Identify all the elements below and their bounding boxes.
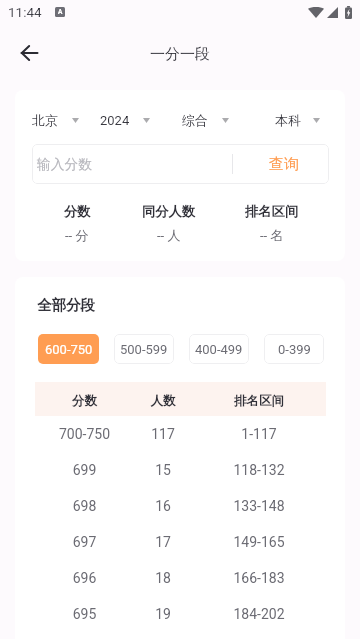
button[interactable]: 698 [15, 488, 345, 524]
staticText: 698 [35, 498, 134, 514]
staticText: 全部分段 [37, 296, 95, 314]
staticText: 综合 [182, 112, 208, 128]
staticText: -- 人 [157, 227, 181, 243]
staticText: 本科 [275, 112, 301, 128]
staticText: 人数 [134, 393, 192, 409]
staticText: 分数 [35, 393, 134, 409]
button[interactable]: 696 [15, 560, 345, 596]
staticText: 166-183 [192, 570, 326, 586]
button[interactable]: 699 [15, 452, 345, 488]
staticText: -- 名 [260, 227, 284, 243]
button[interactable]: 697 [15, 524, 345, 560]
staticText: 700-750 [35, 426, 134, 442]
staticText: -- 分 [65, 227, 89, 243]
staticText: 查询 [269, 155, 299, 174]
staticText: 2024 [100, 113, 130, 128]
staticText: A [58, 8, 63, 16]
staticText: 16 [134, 498, 192, 514]
staticText: 400-499 [195, 342, 243, 357]
staticText: 排名区间 [245, 203, 299, 220]
staticText: 15 [134, 462, 192, 478]
staticText: 0-399 [278, 342, 311, 357]
staticText: 北京 [32, 112, 58, 128]
staticText: 500-599 [120, 342, 168, 357]
staticText: 11:44 [8, 4, 42, 20]
staticText: 118-132 [192, 462, 326, 478]
staticText: 184-202 [192, 606, 326, 622]
button[interactable]: 600-750 [38, 334, 99, 364]
staticText: 17 [134, 534, 192, 550]
button[interactable]: 查询 [233, 144, 329, 184]
staticText: 同分人数 [142, 203, 196, 220]
button[interactable]: 700-750 [15, 416, 345, 452]
button[interactable]: 0-399 [264, 334, 324, 364]
button[interactable]: 北京 [32, 109, 79, 131]
staticText: 19 [134, 606, 192, 622]
button[interactable]: 695 [15, 596, 345, 632]
staticText: 133-148 [192, 498, 326, 514]
staticText: 149-165 [192, 534, 326, 550]
staticText: 699 [35, 462, 134, 478]
staticText: 600-750 [45, 342, 93, 357]
staticText: 695 [35, 606, 134, 622]
button[interactable]: 500-599 [114, 334, 174, 364]
button[interactable]: Back [10, 33, 48, 71]
button[interactable]: 2024 [100, 110, 150, 131]
button[interactable]: 本科 [275, 109, 320, 131]
staticText: 分数 [64, 203, 91, 220]
staticText: 697 [35, 534, 134, 550]
button[interactable]: 综合 [182, 109, 229, 131]
staticText: 1-117 [192, 426, 326, 442]
staticText: 输入分数 [37, 156, 232, 173]
staticText: 18 [134, 570, 192, 586]
staticText: 117 [134, 426, 192, 442]
staticText: 一分一段 [150, 45, 210, 64]
staticText: 排名区间 [192, 393, 326, 409]
button[interactable]: 400-499 [189, 334, 249, 364]
staticText: 696 [35, 570, 134, 586]
